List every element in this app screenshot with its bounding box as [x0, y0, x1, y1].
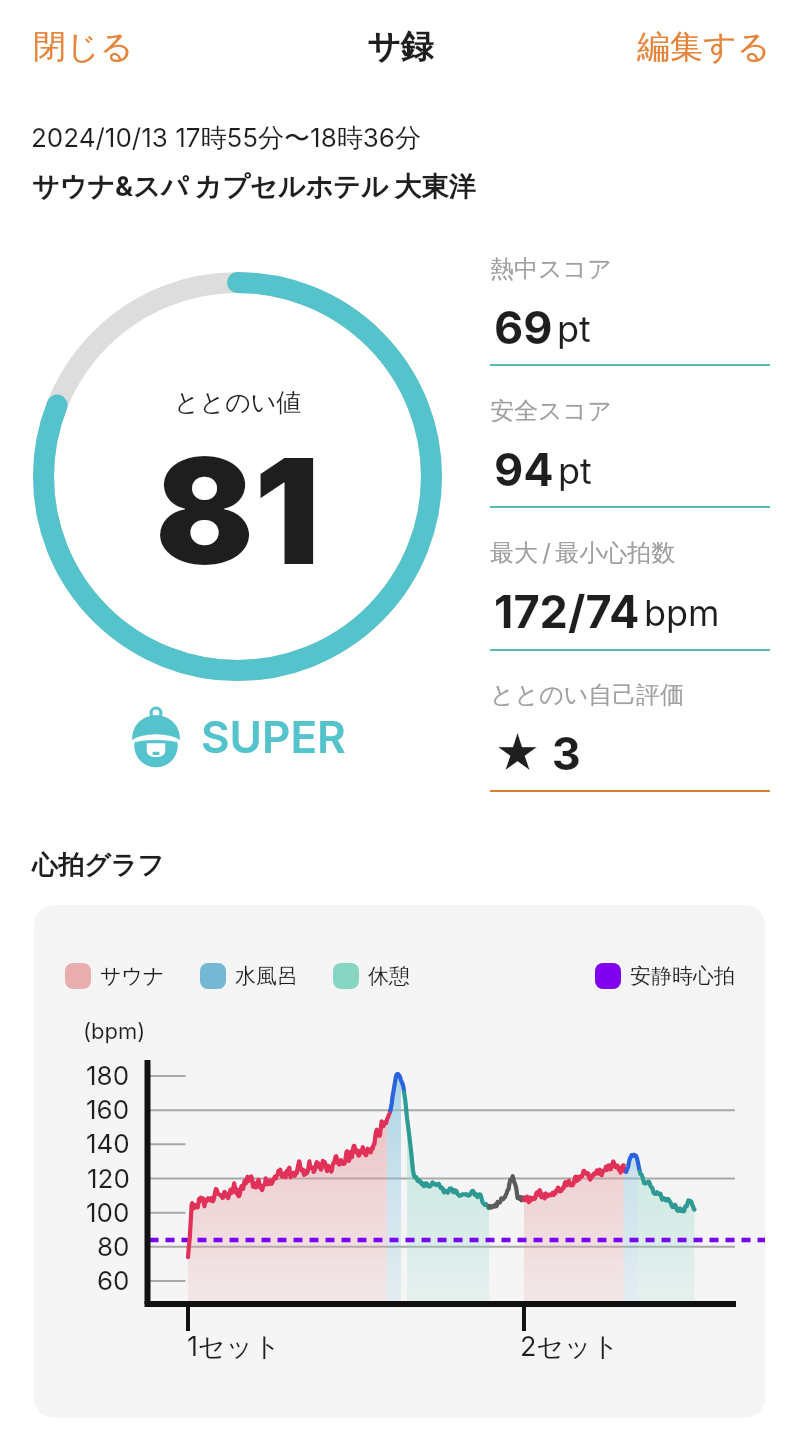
staticText: 60 [97, 1265, 130, 1296]
staticText: 安静時心拍 [630, 963, 735, 989]
staticText: 最大 / 最小心拍数 [490, 538, 676, 568]
staticText: pt [557, 307, 591, 351]
staticText: ★ 3 [494, 726, 581, 780]
staticText: サ録 [367, 26, 434, 68]
staticText: SUPER [201, 710, 346, 763]
staticText: pt [558, 449, 592, 493]
staticText: 120 [87, 1163, 130, 1194]
staticText: ととのい値 [174, 387, 302, 418]
staticText: bpm [644, 591, 720, 635]
staticText: 140 [86, 1128, 130, 1159]
staticText: 編集する [637, 26, 771, 68]
staticText: ととのい自己評価 [490, 680, 685, 710]
staticText: (bpm) [83, 1018, 146, 1045]
staticText: 2セット [520, 1330, 620, 1364]
staticText: 安全スコア [490, 396, 612, 426]
staticText: 1セット [187, 1330, 281, 1364]
staticText: 閉じる [33, 26, 134, 68]
staticText: 水風呂 [235, 963, 298, 989]
staticText: 休憩 [368, 963, 410, 989]
staticText: 80 [97, 1231, 130, 1262]
staticText: 180 [86, 1060, 130, 1091]
staticText: 94 [494, 442, 554, 496]
staticText: 160 [86, 1094, 130, 1125]
button[interactable]: 閉じる [21, 16, 146, 78]
staticText: 172/74 [494, 584, 640, 638]
staticText: 熱中スコア [490, 254, 612, 284]
staticText: サウナ [100, 963, 165, 989]
staticText: 69 [494, 300, 553, 354]
staticText: 100 [86, 1197, 130, 1228]
staticText: 心拍グラフ [32, 849, 164, 882]
staticText: 2024/10/13 17時55分〜18時36分 [31, 122, 421, 155]
button[interactable]: 編集する [625, 16, 783, 78]
staticText: 81 [155, 423, 321, 600]
staticText: サウナ&スパ カプセルホテル 大東洋 [32, 170, 476, 204]
